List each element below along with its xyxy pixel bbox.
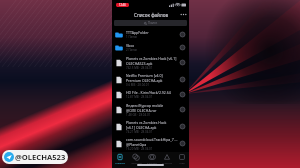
staticText: OLECHA523.apk: [126, 61, 153, 66]
staticText: [v6.1] OLECHA.apk: [126, 125, 157, 130]
button[interactable]: Поиск: [114, 20, 187, 26]
staticText: 1 Папок: [126, 35, 138, 39]
staticText: Загрузки: [131, 161, 142, 164]
staticText: Planets vs Zombies Hack: [126, 120, 167, 125]
staticText: 0.6 MB · 28.04.01: [126, 83, 150, 87]
staticText: @ОЛЕ OLECHA.rar: [126, 108, 157, 113]
button[interactable]: Planets vs Zombies Hack: [112, 118, 189, 135]
staticText: 12:46: [119, 3, 126, 7]
button[interactable]: Ещё: [174, 154, 189, 163]
button[interactable]: Row options: [179, 91, 186, 98]
button[interactable]: Браузер: [144, 154, 159, 163]
button[interactable]: Row options: [179, 123, 186, 130]
staticText: @OLECHA523: [15, 152, 66, 162]
staticText: Поиск: [147, 21, 158, 25]
staticText: Premium OLECHA.apk: [126, 78, 163, 83]
staticText: Браузер: [147, 161, 157, 164]
button[interactable]: Row options: [179, 31, 186, 38]
staticText: @PlanetGpa: [126, 142, 147, 147]
staticText: 74.21 MB · 28.04.01: [126, 130, 153, 134]
staticText: Planets vs Zombies Hack [v6.1]: [126, 56, 177, 61]
button[interactable]: Очистка: [159, 154, 174, 163]
button[interactable]: Row options: [179, 106, 186, 113]
staticText: Список файлов: [134, 12, 168, 18]
button[interactable]: Row options: [179, 76, 186, 83]
button[interactable]: Row options: [179, 140, 186, 147]
staticText: 2 Папок: [126, 48, 138, 52]
button[interactable]: Vbox: [112, 41, 189, 54]
button[interactable]: com.soundcloud.TrackHipa_7.02.0: [112, 135, 189, 152]
staticText: Главная: [115, 161, 125, 164]
button[interactable]: Row options: [179, 59, 186, 66]
button[interactable]: Главная: [112, 154, 128, 163]
staticText: 16.20 MB · 28.04.01: [126, 147, 153, 151]
staticText: 742.5 MB · 28.04.01: [126, 66, 153, 70]
staticText: com.soundcloud.TrackHipa_7.02.0: [126, 137, 179, 142]
button[interactable]: Загрузки: [128, 154, 144, 163]
staticText: Очистка: [162, 161, 172, 164]
button[interactable]: TTTAppFolder: [112, 28, 189, 41]
staticText: Netflix Premium [v4.0]: [126, 73, 163, 78]
staticText: Яндекс/Курсар mobile: [126, 103, 164, 108]
button[interactable]: Яндекс/Курсар mobile: [112, 101, 189, 118]
button[interactable]: HD File - Kirin/Hack/2.92.64: [112, 88, 189, 101]
staticText: HD File - Kirin/Hack/2.92.64: [126, 90, 171, 95]
staticText: Ещё: [179, 161, 185, 164]
button[interactable]: Netflix Premium [v4.0]: [112, 71, 189, 88]
button[interactable]: Row options: [179, 44, 186, 51]
staticText: TTTAppFolder: [126, 30, 149, 35]
staticText: 12.87 MB · 28.04.01: [126, 95, 153, 99]
button[interactable]: More options: [179, 10, 188, 19]
staticText: 1.48 GB · 28.04.01: [126, 113, 151, 117]
staticText: Vbox: [126, 43, 135, 48]
button[interactable]: Planets vs Zombies Hack [v6.1]: [112, 54, 189, 71]
